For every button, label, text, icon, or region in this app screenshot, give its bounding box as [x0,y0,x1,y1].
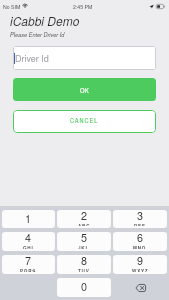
staticText: 3 [137,210,144,223]
button[interactable]: 6 [113,232,167,251]
button[interactable]: 5 [57,232,111,251]
staticText: JKL [78,245,90,249]
staticText: No SIM [3,3,21,10]
staticText: 2 [81,210,88,223]
staticText: ABC [78,223,91,226]
staticText: PQRS [20,268,37,272]
staticText: 2:45 PM [73,3,93,10]
staticText: 4 [25,232,32,245]
staticText: 9 [137,255,144,268]
button[interactable]: Driver Id [13,46,156,70]
staticText: DEF [134,223,146,226]
staticText: GHI [23,245,34,249]
button[interactable]: 9 [113,255,167,274]
button[interactable]: 7 [2,255,55,274]
button[interactable]: CANCEL [13,110,156,133]
staticText: 5 [81,232,88,245]
button[interactable]: Backspace [113,278,167,297]
staticText: 8 [81,255,88,268]
staticText: Please Enter Driver Id [10,31,65,39]
staticText: OK [80,86,90,94]
staticText: Driver Id [15,52,49,65]
button[interactable]: 2 [57,210,111,228]
staticText: 1 [25,211,32,226]
button[interactable]: 8 [57,255,111,274]
button[interactable]: 4 [2,232,55,251]
staticText: TUV [78,268,90,272]
staticText: 6 [137,232,144,245]
button[interactable]: 0 [57,278,111,297]
staticText: WXYZ [132,268,149,272]
staticText: 0 [81,279,88,294]
staticText: iCabbi Demo [10,12,80,27]
staticText: MNO [133,245,147,249]
button[interactable]: 3 [113,210,167,228]
button[interactable]: 1 [2,210,55,228]
staticText: 7 [25,255,32,268]
button[interactable]: OK [13,78,156,101]
staticText: CANCEL [70,117,99,125]
